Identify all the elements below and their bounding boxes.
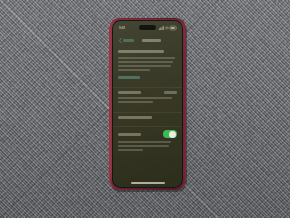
staticText: 9:41 — [119, 26, 126, 30]
button[interactable]: Toggle setting — [163, 130, 177, 138]
button[interactable]: Back — [118, 36, 135, 45]
button[interactable] — [113, 113, 182, 122]
button[interactable] — [118, 75, 140, 80]
button[interactable]: Toggle setting — [113, 127, 182, 141]
button[interactable] — [113, 88, 182, 97]
